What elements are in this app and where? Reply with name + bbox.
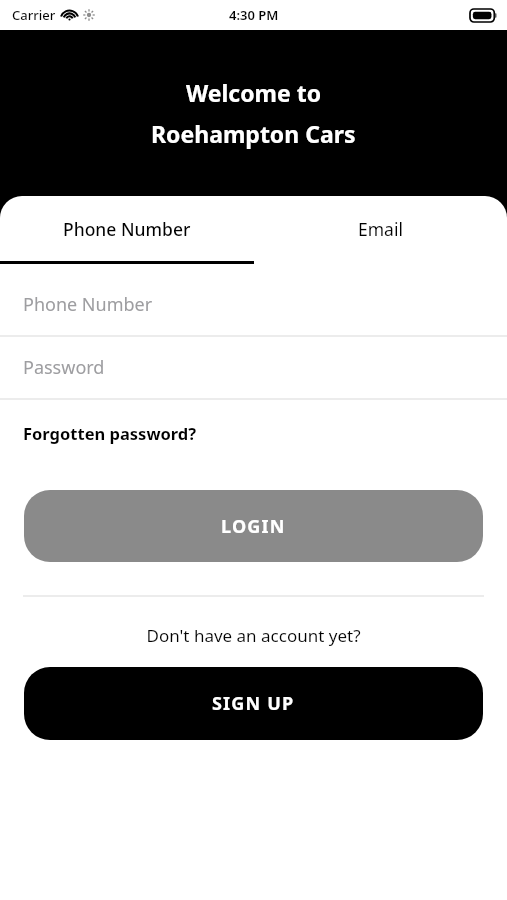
staticText: Welcome to <box>186 77 322 108</box>
button[interactable]: Email <box>253 196 507 261</box>
staticText: Forgotten password? <box>23 422 197 444</box>
staticText: LOGIN <box>221 514 286 539</box>
button[interactable]: Phone Number <box>0 196 253 261</box>
staticText: 4:30 PM <box>229 6 279 24</box>
button[interactable]: SIGN UP <box>24 667 483 740</box>
staticText: Phone Number <box>23 292 153 317</box>
staticText: Carrier <box>12 6 56 24</box>
staticText: Email <box>358 217 403 241</box>
staticText: Password <box>23 355 105 380</box>
staticText: Phone Number <box>63 217 191 241</box>
staticText: SIGN UP <box>212 691 295 716</box>
button[interactable]: Phone Number <box>0 274 507 335</box>
button[interactable]: LOGIN <box>24 490 483 562</box>
staticText: Roehampton Cars <box>151 118 356 149</box>
button[interactable]: Password <box>0 337 507 398</box>
button[interactable]: Forgotten password? <box>0 418 507 448</box>
staticText: Don't have an account yet? <box>0 624 507 647</box>
